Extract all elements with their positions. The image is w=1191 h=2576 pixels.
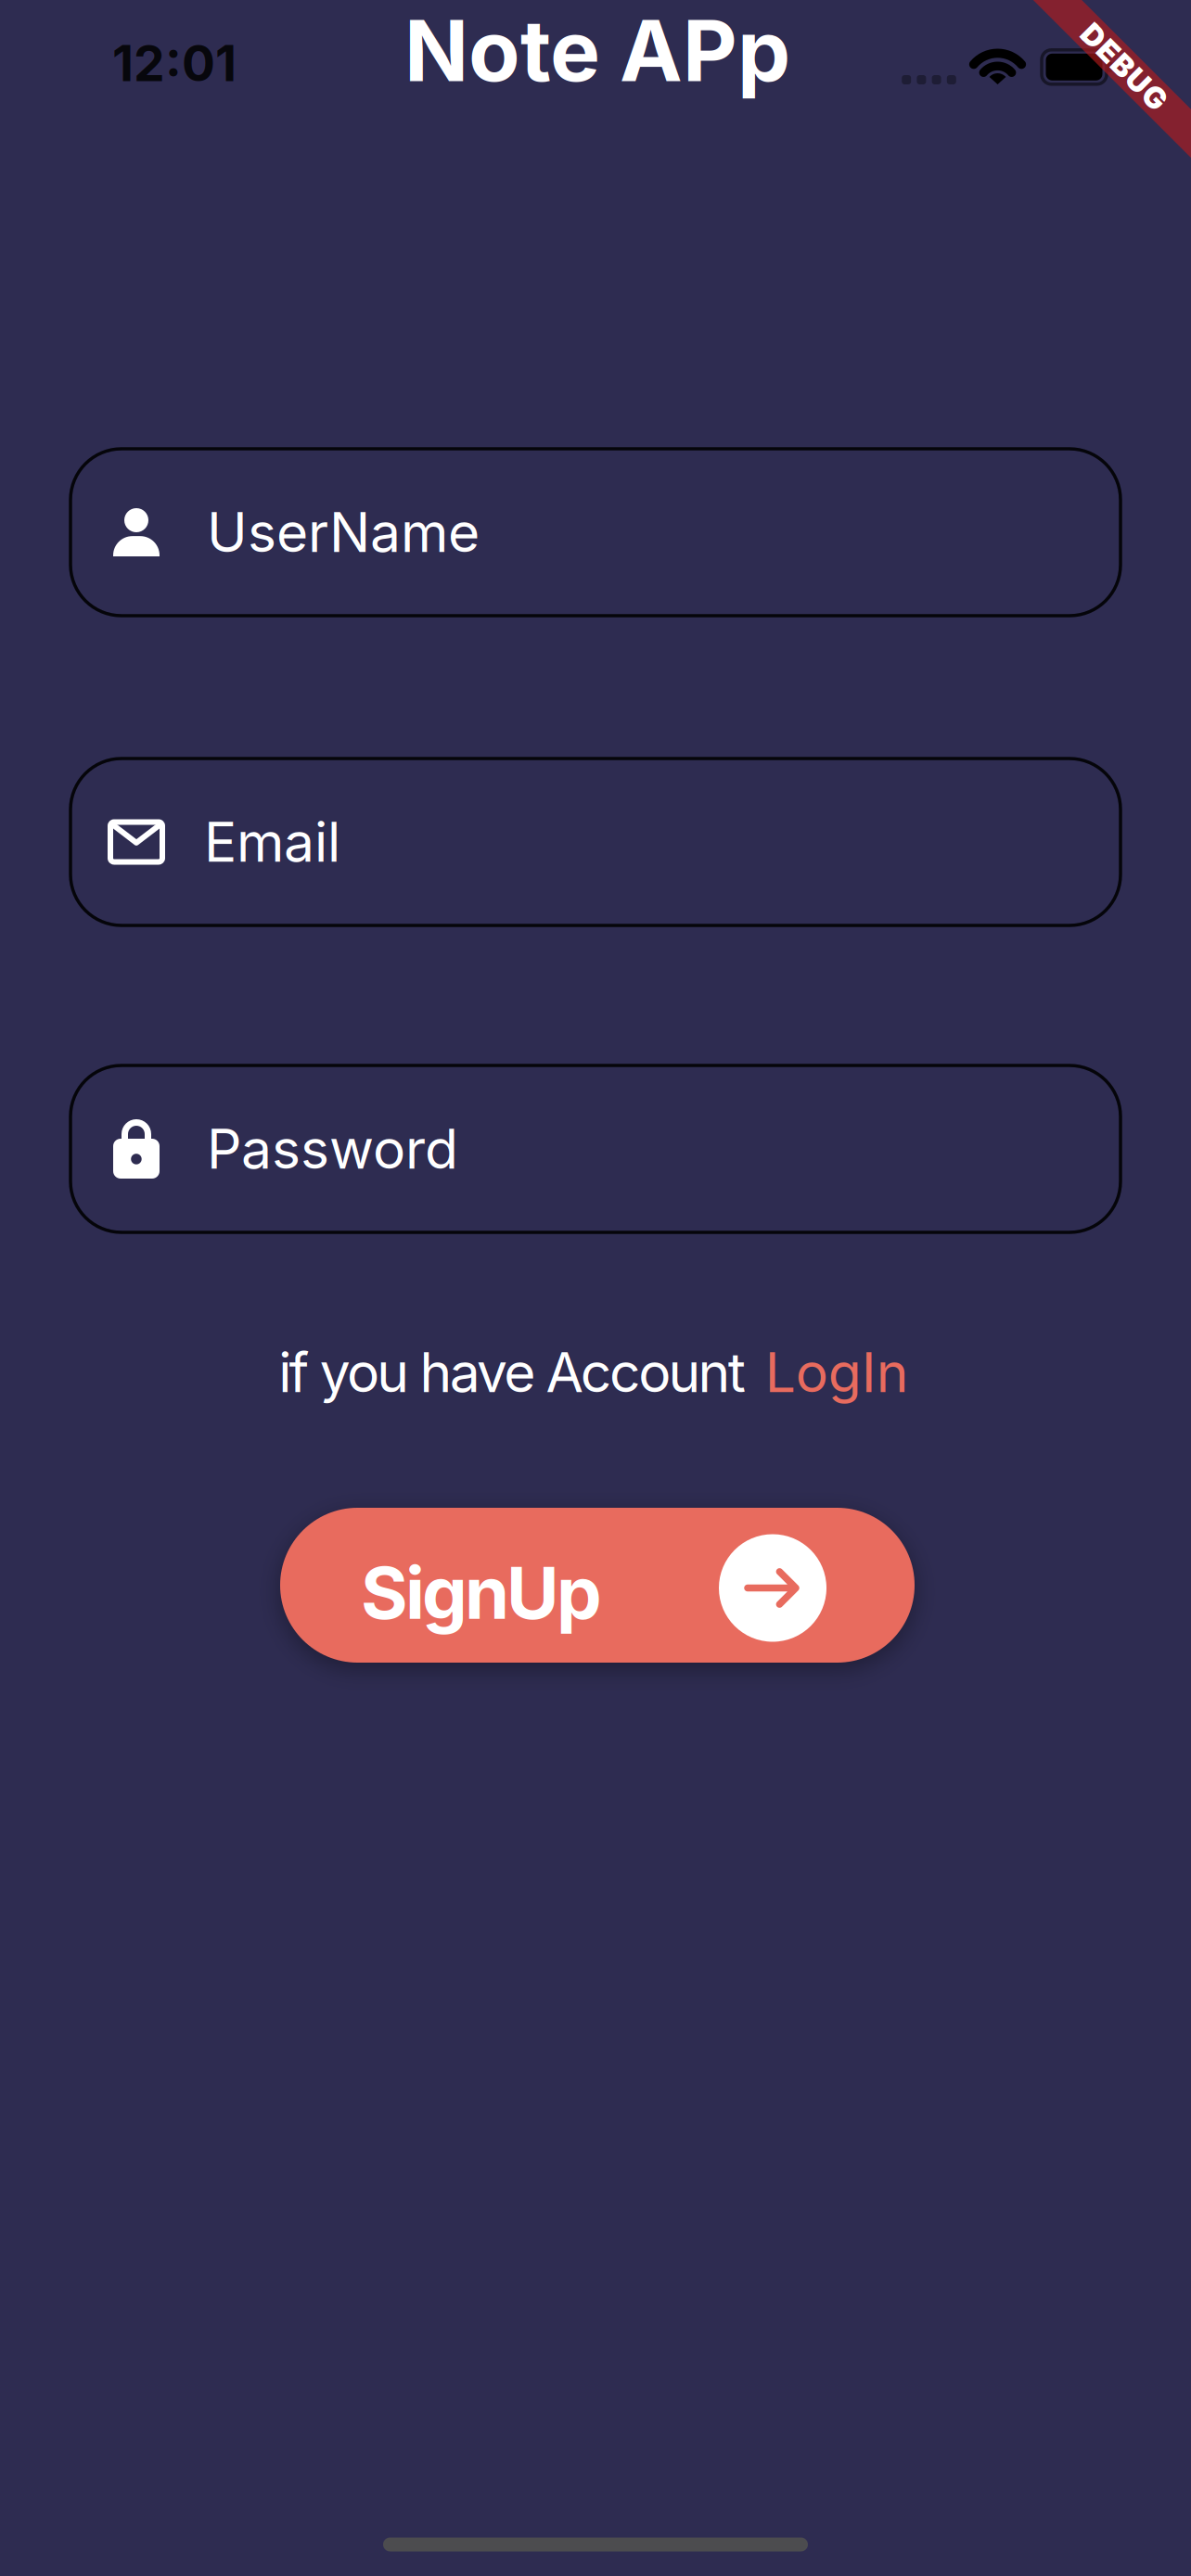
button[interactable]: LogIn (765, 1340, 909, 1404)
button[interactable]: SignUp (280, 1508, 915, 1663)
staticText: Password (207, 1117, 458, 1181)
staticText: if you have Account (278, 1340, 746, 1404)
staticText: Email (204, 810, 340, 874)
button[interactable]: UserName (70, 449, 1121, 616)
staticText: SignUp (361, 1550, 602, 1635)
staticText: DEBUG (1070, 49, 1178, 84)
staticText: UserName (207, 500, 480, 564)
staticText: LogIn (765, 1340, 909, 1404)
staticText: 12:01 (112, 34, 237, 92)
staticText: Note APp (404, 1, 790, 100)
button[interactable]: Email (70, 759, 1121, 925)
button[interactable]: Password (70, 1065, 1121, 1232)
